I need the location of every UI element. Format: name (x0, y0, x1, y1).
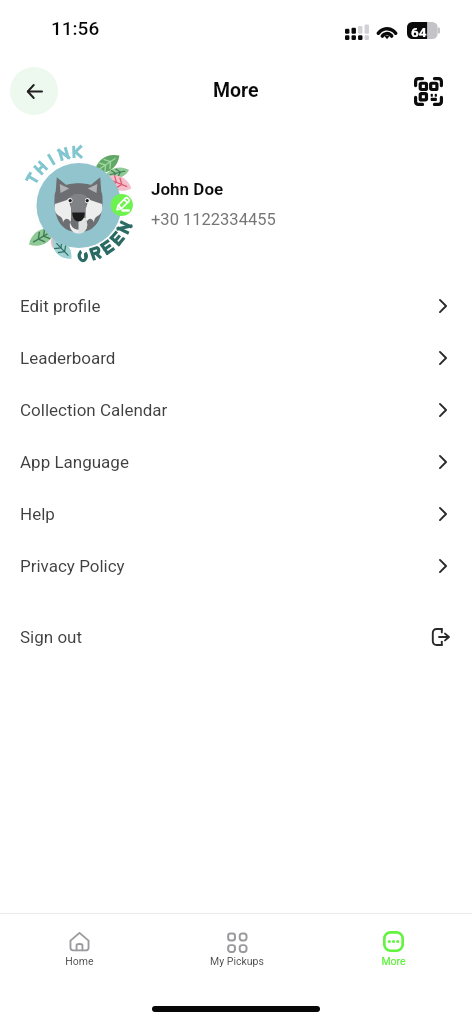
staticText: More (381, 955, 406, 967)
button[interactable]: Scan QR code (405, 68, 451, 114)
staticText: John Doe (151, 179, 224, 199)
button[interactable]: Help (0, 488, 472, 540)
staticText: +30 1122334455 (151, 210, 276, 229)
button[interactable]: Privacy Policy (0, 540, 472, 592)
button[interactable]: Back (10, 67, 58, 115)
staticText: Home (65, 955, 94, 967)
button[interactable]: Collection Calendar (0, 384, 472, 436)
staticText: Edit profile (20, 296, 101, 316)
staticText: More (213, 79, 259, 102)
staticText: App Language (20, 452, 129, 472)
button[interactable]: My Pickups (158, 914, 315, 977)
button[interactable]: App Language (0, 436, 472, 488)
staticText: Leaderboard (20, 348, 116, 368)
staticText: Sign out (20, 627, 83, 647)
staticText: 11:56 (51, 17, 100, 39)
staticText: Collection Calendar (20, 400, 168, 420)
staticText: My Pickups (210, 955, 264, 967)
button[interactable]: Edit profile (0, 280, 472, 332)
staticText: Privacy Policy (20, 556, 125, 576)
staticText: Help (20, 504, 55, 524)
button[interactable]: Leaderboard (0, 332, 472, 384)
button[interactable]: Sign out (0, 611, 472, 663)
button[interactable]: More (315, 914, 472, 977)
staticText: 64 (411, 24, 427, 40)
button[interactable]: Home (0, 914, 158, 977)
